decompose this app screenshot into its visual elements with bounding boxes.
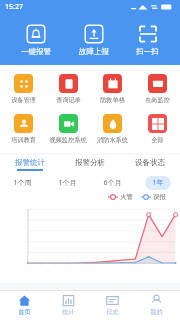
staticText: 培训教育 xyxy=(11,136,36,144)
button[interactable]: 消防水系统 xyxy=(90,111,134,147)
staticText: 统计 xyxy=(62,308,75,316)
staticText: 15:27 xyxy=(5,2,23,12)
button[interactable]: 1个周 xyxy=(6,176,39,190)
staticText: 消防水系统 xyxy=(97,136,128,144)
button[interactable]: 查询记录 xyxy=(46,71,90,107)
button[interactable]: 防救单格 xyxy=(90,71,134,107)
staticText: 一键报警 xyxy=(21,47,51,56)
staticText: 误报 xyxy=(153,193,166,201)
button[interactable]: 报警统计 xyxy=(0,155,60,174)
button[interactable]: 统计 xyxy=(48,294,88,316)
button[interactable]: 设备管理 xyxy=(1,71,45,107)
staticText: 扫一扫 xyxy=(136,47,159,56)
staticText: 设备管理 xyxy=(11,96,36,104)
button[interactable]: 在岗监控 xyxy=(135,71,179,107)
staticText: 查询记录 xyxy=(56,96,81,104)
staticText: 在岗监控 xyxy=(145,96,170,104)
button[interactable]: 一键报警 xyxy=(15,22,57,58)
staticText: 6个月 xyxy=(103,178,122,188)
staticText: 报警统计 xyxy=(15,158,45,167)
staticText: 1个月 xyxy=(58,178,77,188)
button[interactable]: 设备状态 xyxy=(120,155,180,174)
button[interactable]: 6个月 xyxy=(96,176,129,190)
button[interactable]: 1个月 xyxy=(51,176,84,190)
staticText: 故障上报 xyxy=(79,47,109,56)
staticText: 我的 xyxy=(150,308,163,316)
staticText: 防救单格 xyxy=(100,96,125,104)
button[interactable]: 我的 xyxy=(136,294,176,316)
staticText: 报警分析 xyxy=(75,158,105,167)
staticText: 全部 xyxy=(151,136,164,144)
button[interactable]: 培训教育 xyxy=(1,111,45,147)
staticText: 首页 xyxy=(18,308,31,316)
button[interactable]: 1年 xyxy=(145,176,171,190)
button[interactable]: 视频监控系统 xyxy=(46,111,90,147)
button[interactable]: 首页 xyxy=(4,294,44,316)
staticText: 日志 xyxy=(106,308,119,316)
button[interactable]: 报警分析 xyxy=(60,155,120,174)
staticText: 1个周 xyxy=(13,178,32,188)
staticText: 视频监控系统 xyxy=(49,136,87,144)
button[interactable]: 故障上报 xyxy=(73,22,115,58)
button[interactable]: 扫一扫 xyxy=(130,22,165,58)
staticText: 火警 xyxy=(120,193,133,201)
staticText: 设备状态 xyxy=(135,158,165,167)
button[interactable]: 全部 xyxy=(135,111,179,147)
staticText: 1年 xyxy=(152,178,164,188)
button[interactable]: 日志 xyxy=(92,294,132,316)
